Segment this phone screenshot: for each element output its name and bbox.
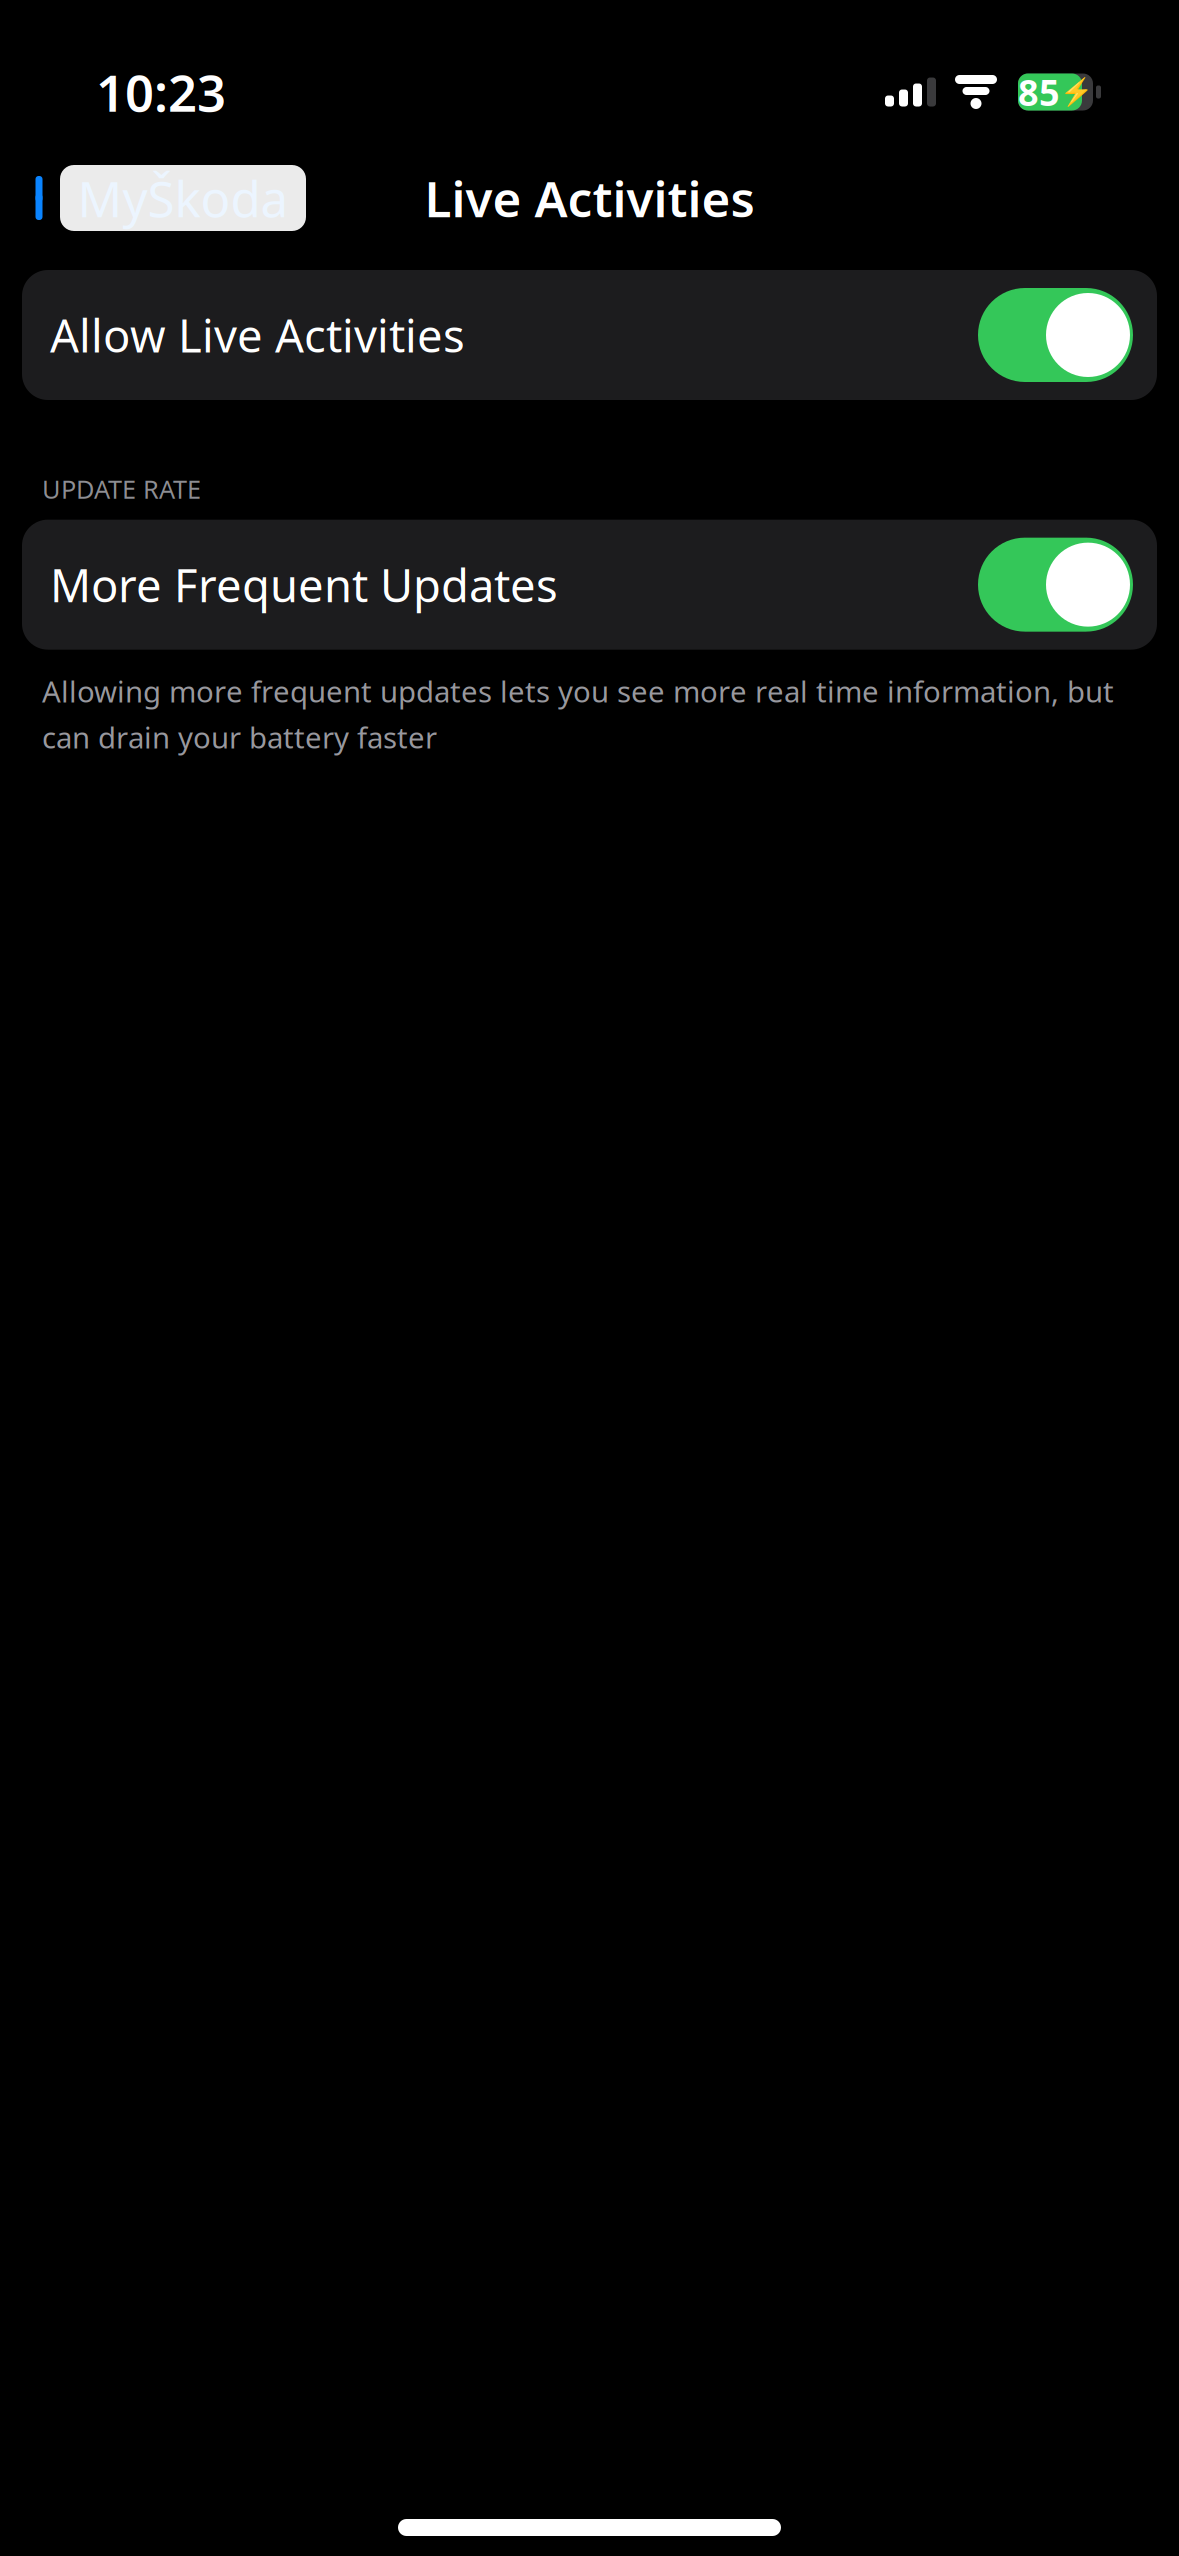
staticText: Allow Live Activities [50, 305, 465, 365]
button[interactable]: More Frequent Updates [22, 520, 1157, 650]
staticText: 10:23 [96, 58, 226, 126]
button[interactable]: Back [0, 155, 306, 241]
staticText: More Frequent Updates [50, 554, 558, 615]
staticText: Allowing more frequent updates lets you … [42, 672, 1114, 756]
staticText: MyŠkoda [77, 165, 288, 231]
staticText: Live Activities [424, 165, 754, 231]
staticText: 85 [1018, 68, 1060, 116]
staticText: ⚡ [1060, 77, 1093, 107]
button[interactable]: Allow Live Activities [22, 270, 1157, 400]
staticText: UPDATE RATE [42, 472, 201, 506]
